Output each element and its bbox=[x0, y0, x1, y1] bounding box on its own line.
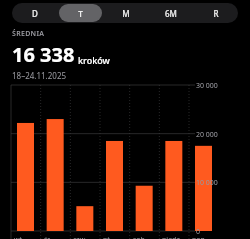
staticText: pt. bbox=[103, 235, 112, 239]
staticText: D bbox=[32, 8, 38, 19]
staticText: 10 000 bbox=[196, 178, 218, 188]
button[interactable]: D bbox=[13, 4, 57, 22]
staticText: 16 338 bbox=[12, 41, 75, 68]
staticText: śr. bbox=[44, 235, 51, 239]
button[interactable]: M bbox=[104, 4, 147, 22]
button[interactable]: R bbox=[194, 4, 237, 22]
staticText: kroków bbox=[78, 54, 110, 66]
staticText: 18–24.11.2025 bbox=[12, 70, 67, 81]
staticText: czw. bbox=[73, 235, 87, 239]
staticText: 20 000 bbox=[196, 130, 218, 140]
staticText: ŚREDNIA bbox=[12, 29, 45, 39]
staticText: T bbox=[78, 8, 83, 19]
staticText: pon. bbox=[192, 235, 207, 239]
staticText: niedz. bbox=[162, 235, 182, 239]
button[interactable]: 6M bbox=[149, 4, 192, 22]
staticText: sob. bbox=[133, 235, 147, 239]
staticText: 6M bbox=[165, 8, 177, 19]
staticText: R bbox=[213, 8, 219, 19]
staticText: 30 000 bbox=[196, 81, 218, 91]
staticText: 0 bbox=[196, 227, 201, 237]
staticText: wt. bbox=[14, 235, 24, 239]
button[interactable]: T bbox=[59, 4, 102, 22]
staticText: M bbox=[122, 8, 130, 19]
